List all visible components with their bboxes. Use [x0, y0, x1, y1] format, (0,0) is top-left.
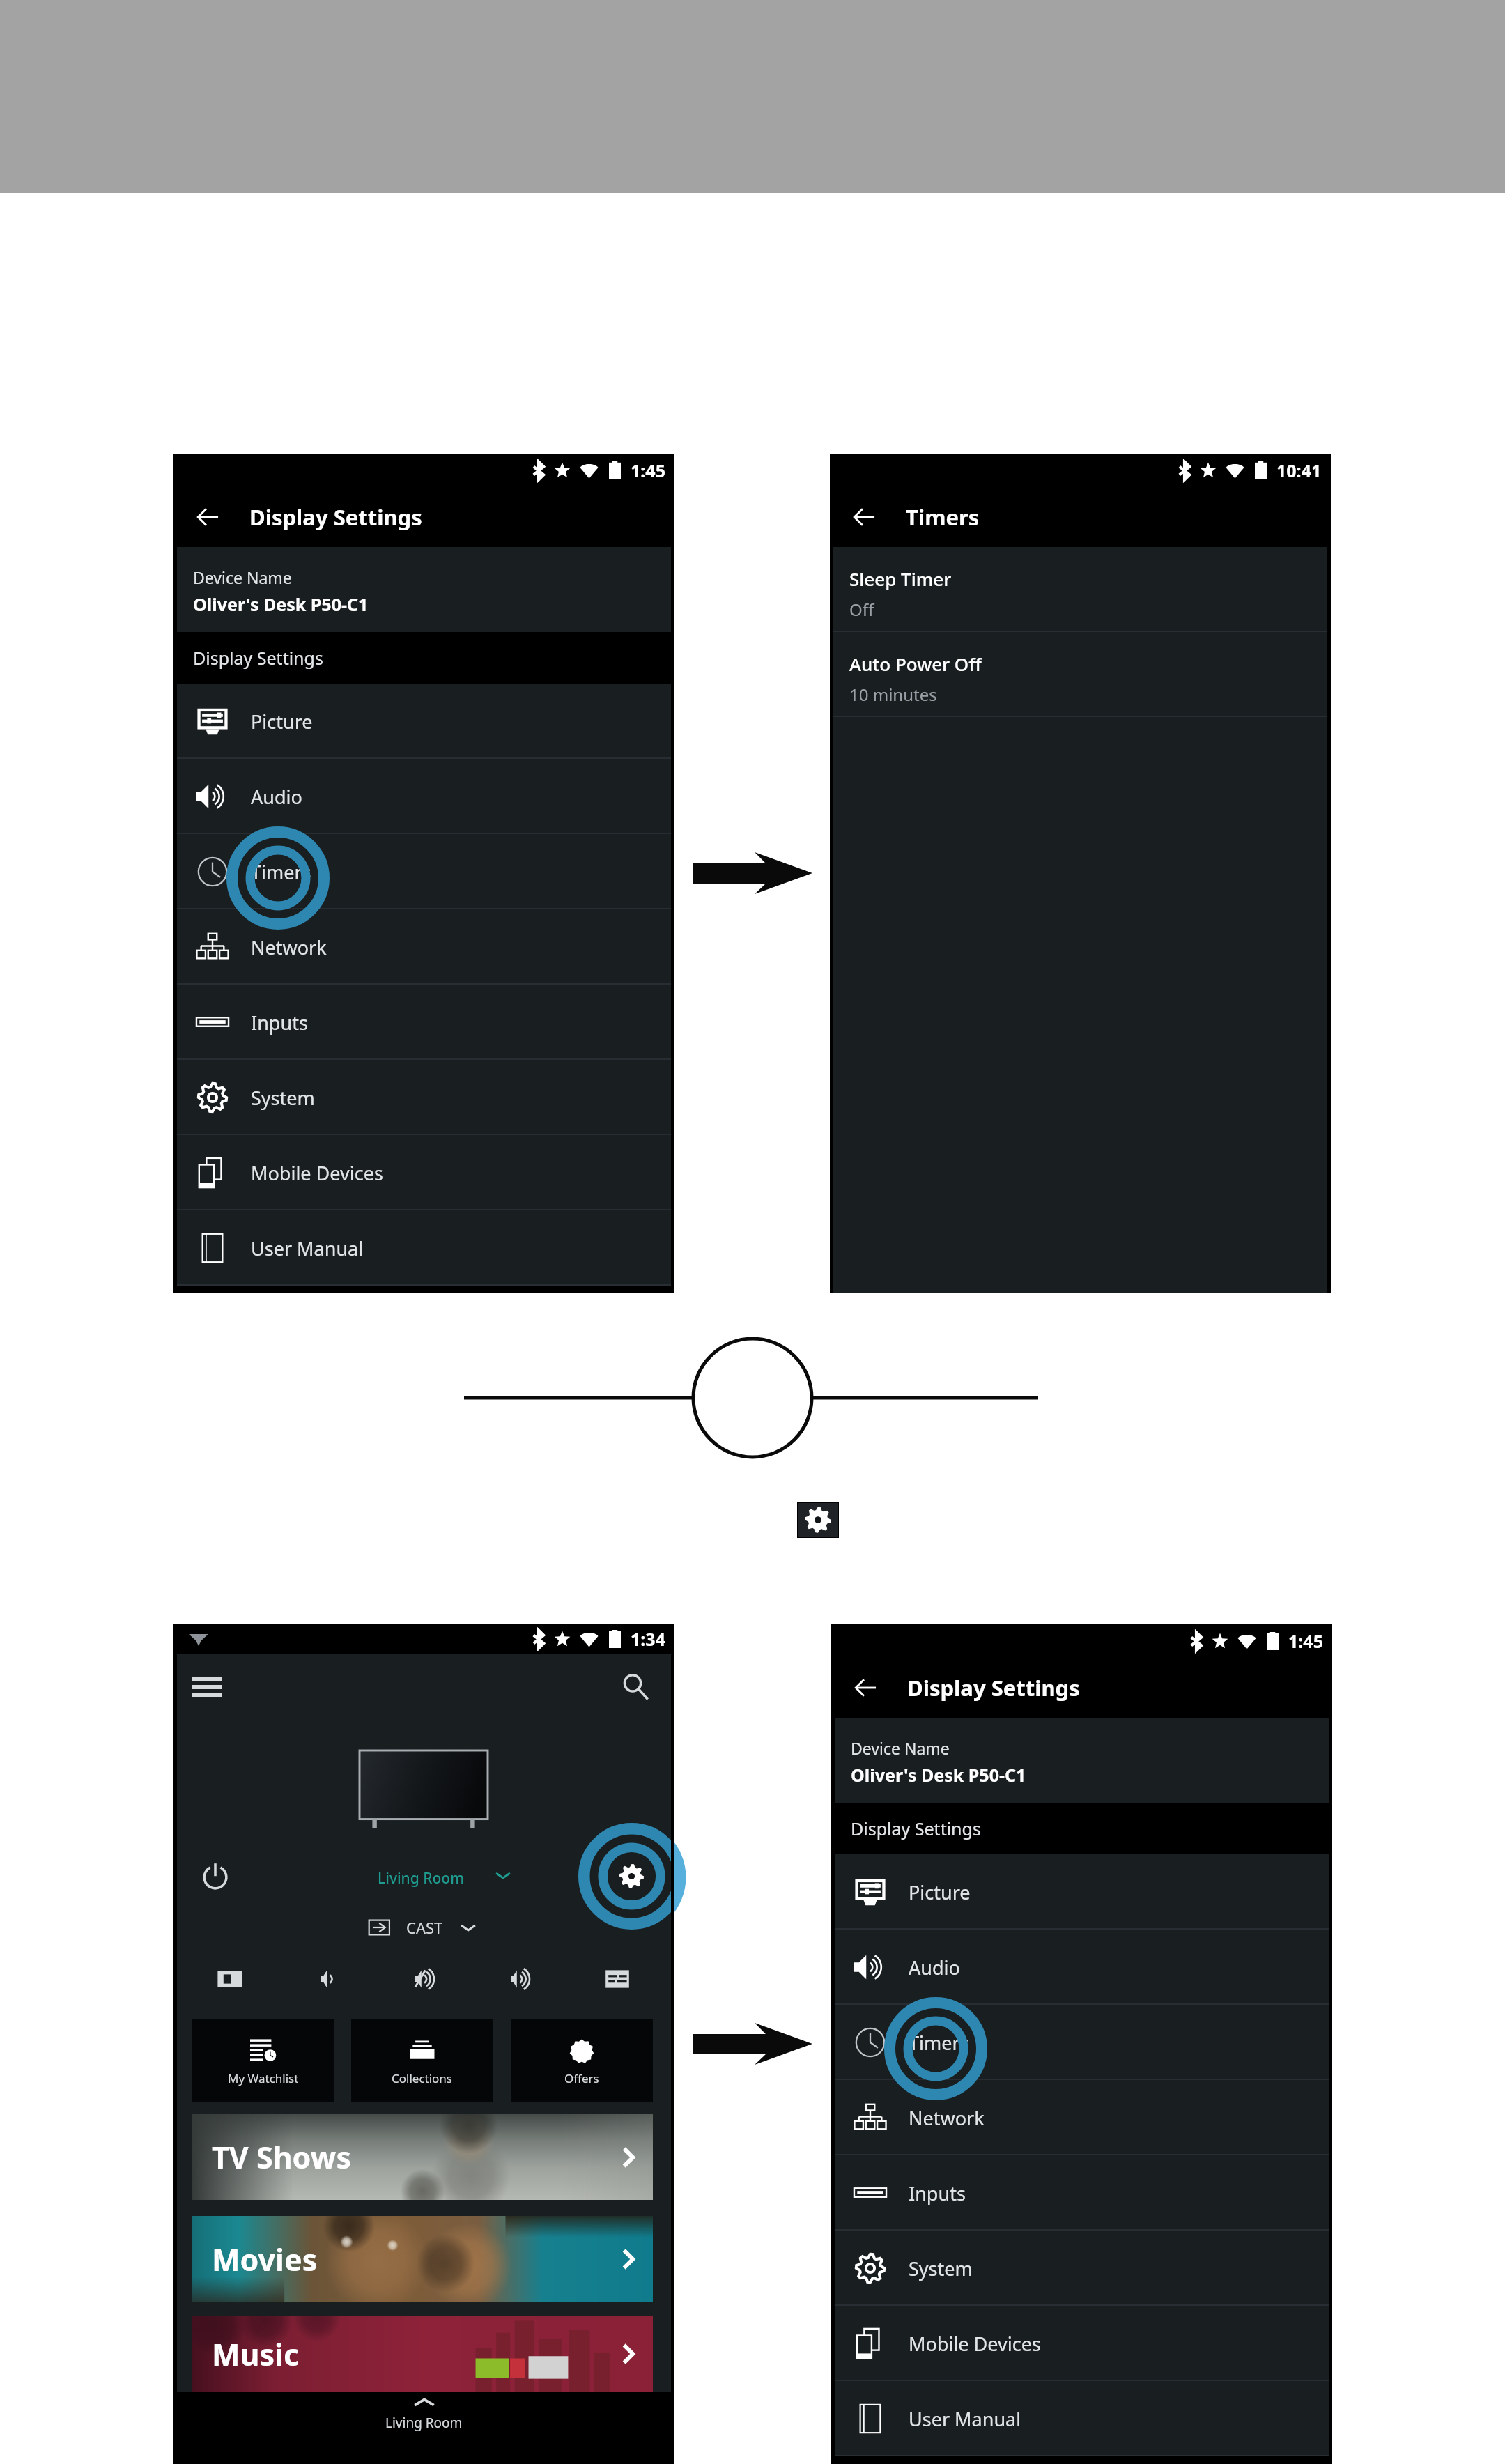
button[interactable]: Device Name	[835, 1718, 1329, 1803]
staticText: Display Settings	[907, 1673, 1080, 1702]
staticText: 1:45	[1288, 1629, 1323, 1653]
button[interactable]: Timers	[177, 834, 671, 909]
button[interactable]: User Manual	[177, 1210, 671, 1286]
button[interactable]: Auto Power Off	[833, 632, 1327, 717]
staticText: System	[909, 2256, 973, 2281]
staticText: Mobile Devices	[909, 2331, 1041, 2357]
staticText: Oliver's Desk P50-C1	[851, 1763, 1026, 1787]
staticText: Device Name	[851, 1737, 950, 1759]
button[interactable]: User Manual	[835, 2381, 1329, 2456]
staticText: Audio	[251, 784, 302, 810]
button[interactable]: Music	[192, 2316, 653, 2392]
staticText: Oliver's Desk P50-C1	[193, 592, 369, 616]
button[interactable]: Menu	[189, 1669, 225, 1705]
staticText: 1:45	[631, 459, 665, 482]
staticText: Movies	[212, 2239, 318, 2280]
staticText: Inputs	[251, 1010, 308, 1035]
button[interactable]: My Watchlist	[192, 2019, 334, 2102]
button[interactable]: Mute	[405, 1960, 442, 1998]
staticText: CAST	[406, 1917, 443, 1938]
button[interactable]: System	[177, 1060, 671, 1135]
button[interactable]: System	[835, 2231, 1329, 2306]
button[interactable]: Network	[177, 909, 671, 985]
button[interactable]: Inputs	[177, 985, 671, 1060]
button[interactable]: Mobile Devices	[835, 2306, 1329, 2381]
button[interactable]: Back	[849, 502, 879, 532]
button[interactable]: Network	[835, 2080, 1329, 2155]
button[interactable]: Audio	[835, 1930, 1329, 2005]
staticText: 10:41	[1276, 459, 1322, 482]
staticText: System	[251, 1085, 315, 1111]
button[interactable]: Movies	[192, 2216, 653, 2302]
staticText: Timers	[251, 859, 311, 885]
staticText: Network	[251, 934, 327, 960]
staticText: 1:34	[631, 1627, 665, 1651]
staticText: User Manual	[251, 1235, 364, 1261]
staticText: 10 minutes	[849, 683, 937, 706]
staticText: User Manual	[909, 2406, 1021, 2432]
button[interactable]: Collections	[351, 2019, 493, 2102]
button[interactable]: Volume up	[500, 1960, 538, 1998]
button[interactable]: Aspect ratio	[211, 1960, 249, 1998]
staticText: Living Room	[385, 2414, 463, 2432]
staticText: My Watchlist	[228, 2070, 299, 2086]
staticText: Music	[212, 2334, 300, 2375]
staticText: Picture	[909, 1879, 971, 1905]
button[interactable]: Audio	[177, 759, 671, 834]
button[interactable]: Picture	[177, 684, 671, 759]
staticText: Display Settings	[851, 1817, 981, 1840]
button[interactable]: Offers	[511, 2019, 653, 2102]
button[interactable]: Sleep Timer	[833, 547, 1327, 632]
staticText: Device Name	[193, 567, 292, 588]
staticText: Mobile Devices	[251, 1160, 383, 1186]
button[interactable]: Mobile Devices	[177, 1135, 671, 1210]
staticText: Offers	[564, 2070, 599, 2086]
button[interactable]: Settings	[798, 1503, 838, 1537]
staticText: Off	[849, 598, 874, 621]
button[interactable]: TV Shows	[192, 2114, 653, 2200]
staticText: Timers	[909, 2030, 969, 2056]
staticText: Network	[909, 2105, 985, 2131]
staticText: Living Room	[378, 1868, 465, 1888]
button[interactable]: CAST	[369, 1914, 476, 1941]
button[interactable]: Search	[617, 1669, 654, 1705]
button[interactable]: Inputs	[835, 2155, 1329, 2231]
staticText: Display Settings	[249, 502, 422, 532]
staticText: Picture	[251, 709, 313, 734]
button[interactable]: Closed captions	[599, 1960, 636, 1998]
button[interactable]: Living Room	[378, 1863, 511, 1893]
button[interactable]: Picture	[835, 1854, 1329, 1930]
button[interactable]: Volume down	[309, 1960, 346, 1998]
button[interactable]: Living Room	[177, 2392, 671, 2464]
staticText: Audio	[909, 1955, 960, 1980]
staticText: Sleep Timer	[849, 567, 952, 591]
staticText: Timers	[906, 502, 980, 532]
staticText: Collections	[392, 2070, 453, 2086]
button[interactable]: Timers	[835, 2005, 1329, 2080]
staticText: Display Settings	[193, 646, 323, 670]
button[interactable]: Back	[850, 1672, 881, 1703]
staticText: TV Shows	[212, 2136, 351, 2178]
button[interactable]: Back	[192, 502, 223, 532]
button[interactable]: Power	[196, 1858, 235, 1897]
staticText: Auto Power Off	[849, 652, 982, 676]
staticText: Inputs	[909, 2180, 966, 2206]
button[interactable]: Device Name	[177, 547, 671, 632]
